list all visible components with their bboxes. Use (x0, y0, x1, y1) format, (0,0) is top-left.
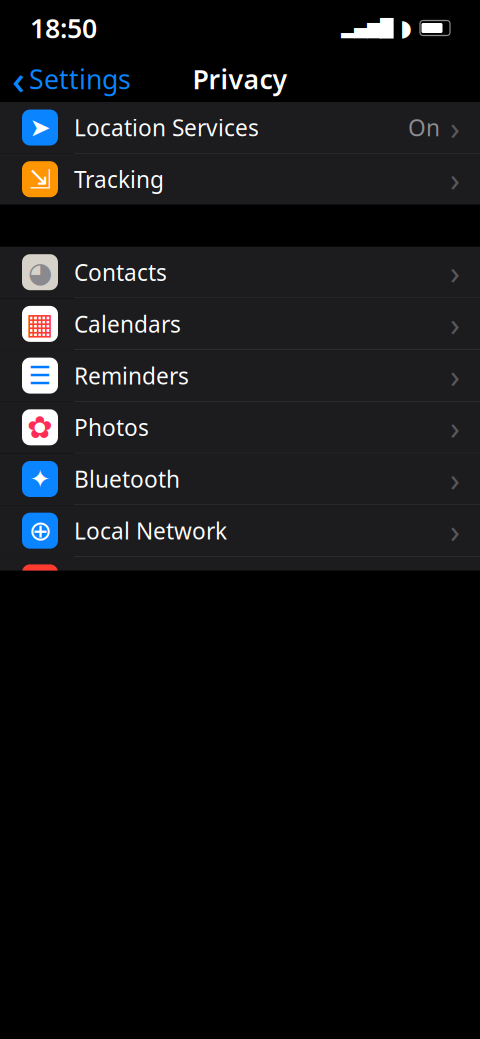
staticText: › (450, 354, 460, 397)
staticText: Microphone (74, 567, 204, 597)
staticText: › (450, 303, 460, 345)
staticText: ✿ (27, 410, 53, 445)
staticText: 18:50 (30, 10, 97, 46)
staticText: › (450, 561, 460, 604)
staticText: Tracking (74, 164, 164, 194)
staticText: Settings (29, 61, 131, 97)
staticText: ▂▄▆█ (341, 18, 393, 38)
button[interactable]: ➤ (0, 102, 480, 154)
staticText: Calendars (74, 309, 181, 339)
button[interactable]: ✿ (0, 402, 480, 453)
staticText: › (450, 458, 460, 500)
staticText: ◗ (400, 15, 412, 41)
button[interactable]: ◕ (0, 247, 480, 298)
button[interactable]: ☰ (0, 350, 480, 402)
staticText: ✦ (29, 465, 50, 493)
staticText: Local Network (74, 516, 227, 546)
staticText: On (408, 112, 440, 142)
staticText: › (450, 509, 460, 552)
staticText: › (450, 106, 460, 149)
staticText: Reminders (74, 360, 189, 391)
staticText: Contacts (74, 257, 167, 287)
staticText: Bluetooth (74, 464, 180, 494)
button[interactable]: ⊕ (0, 505, 480, 557)
staticText: Location Services (74, 112, 259, 142)
staticText: ◕ (28, 256, 52, 288)
button[interactable]: ⇲ (0, 154, 480, 205)
staticText: › (450, 158, 460, 200)
staticText: ⊕ (28, 515, 51, 547)
staticText: ‹ (12, 52, 25, 105)
staticText: Privacy (192, 61, 287, 97)
button[interactable]: ✦ (0, 453, 480, 505)
button[interactable]: ▦ (0, 298, 480, 350)
staticText: › (450, 251, 460, 293)
button[interactable]: ‹ (0, 46, 131, 111)
staticText: Photos (74, 412, 149, 442)
button[interactable]: ♪ (0, 557, 480, 609)
staticText: ☰ (28, 361, 51, 390)
staticText: ⇲ (29, 164, 51, 194)
staticText: › (450, 406, 460, 449)
staticText: ♪ (31, 566, 49, 598)
staticText: ➤ (29, 113, 50, 142)
staticText: ▦ (26, 307, 54, 341)
